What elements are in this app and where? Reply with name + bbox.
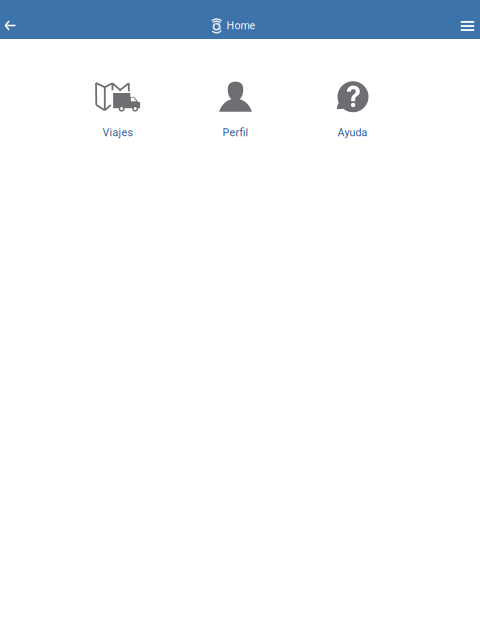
staticText: Ayuda bbox=[337, 126, 367, 139]
staticText: Viajes bbox=[102, 126, 133, 139]
staticText: Home bbox=[226, 19, 255, 32]
button[interactable]: Perfil bbox=[177, 81, 294, 143]
button[interactable]: Viajes bbox=[59, 81, 176, 143]
button[interactable]: Back bbox=[0, 6, 27, 45]
button[interactable]: Ayuda bbox=[294, 81, 411, 143]
staticText: Perfil bbox=[222, 126, 248, 139]
button[interactable]: Menu bbox=[450, 6, 480, 45]
